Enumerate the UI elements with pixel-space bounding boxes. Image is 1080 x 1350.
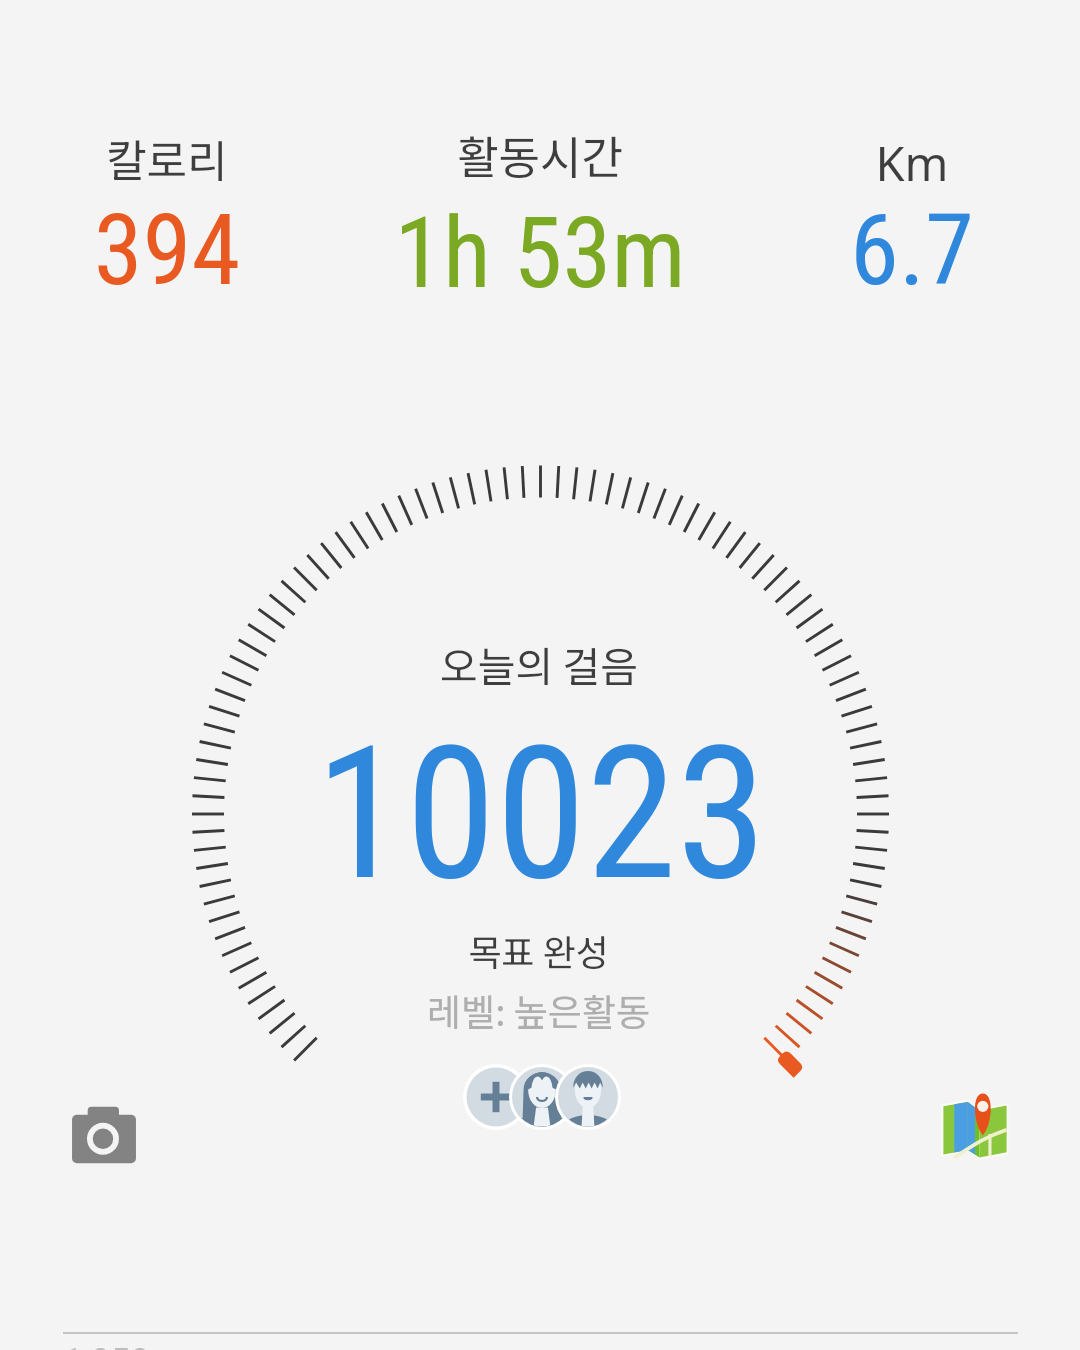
button[interactable]: 활동시간	[360, 100, 720, 300]
button[interactable]: Add friend	[463, 1064, 529, 1130]
button[interactable]: 칼로리	[0, 100, 347, 300]
button[interactable]: Map	[941, 1086, 1009, 1160]
button[interactable]: 10023	[315, 707, 767, 921]
button[interactable]: 목표 완성	[468, 924, 609, 976]
button[interactable]: Friend two	[555, 1064, 621, 1130]
button[interactable]: Camera	[70, 1104, 138, 1166]
staticText: Km	[732, 131, 1080, 195]
button[interactable]: 레벨: 높은활동	[427, 983, 650, 1037]
staticText: 1,050	[63, 1340, 150, 1350]
staticText: 칼로리	[0, 126, 347, 190]
staticText: 6.7	[732, 192, 1080, 308]
button[interactable]: 오늘의 걸음	[440, 634, 638, 693]
button[interactable]: Friend one	[509, 1064, 575, 1130]
button[interactable]: Km	[732, 100, 1080, 300]
staticText: 활동시간	[360, 122, 720, 187]
staticText: 1h 53m	[360, 195, 720, 311]
staticText: 394	[0, 192, 347, 308]
